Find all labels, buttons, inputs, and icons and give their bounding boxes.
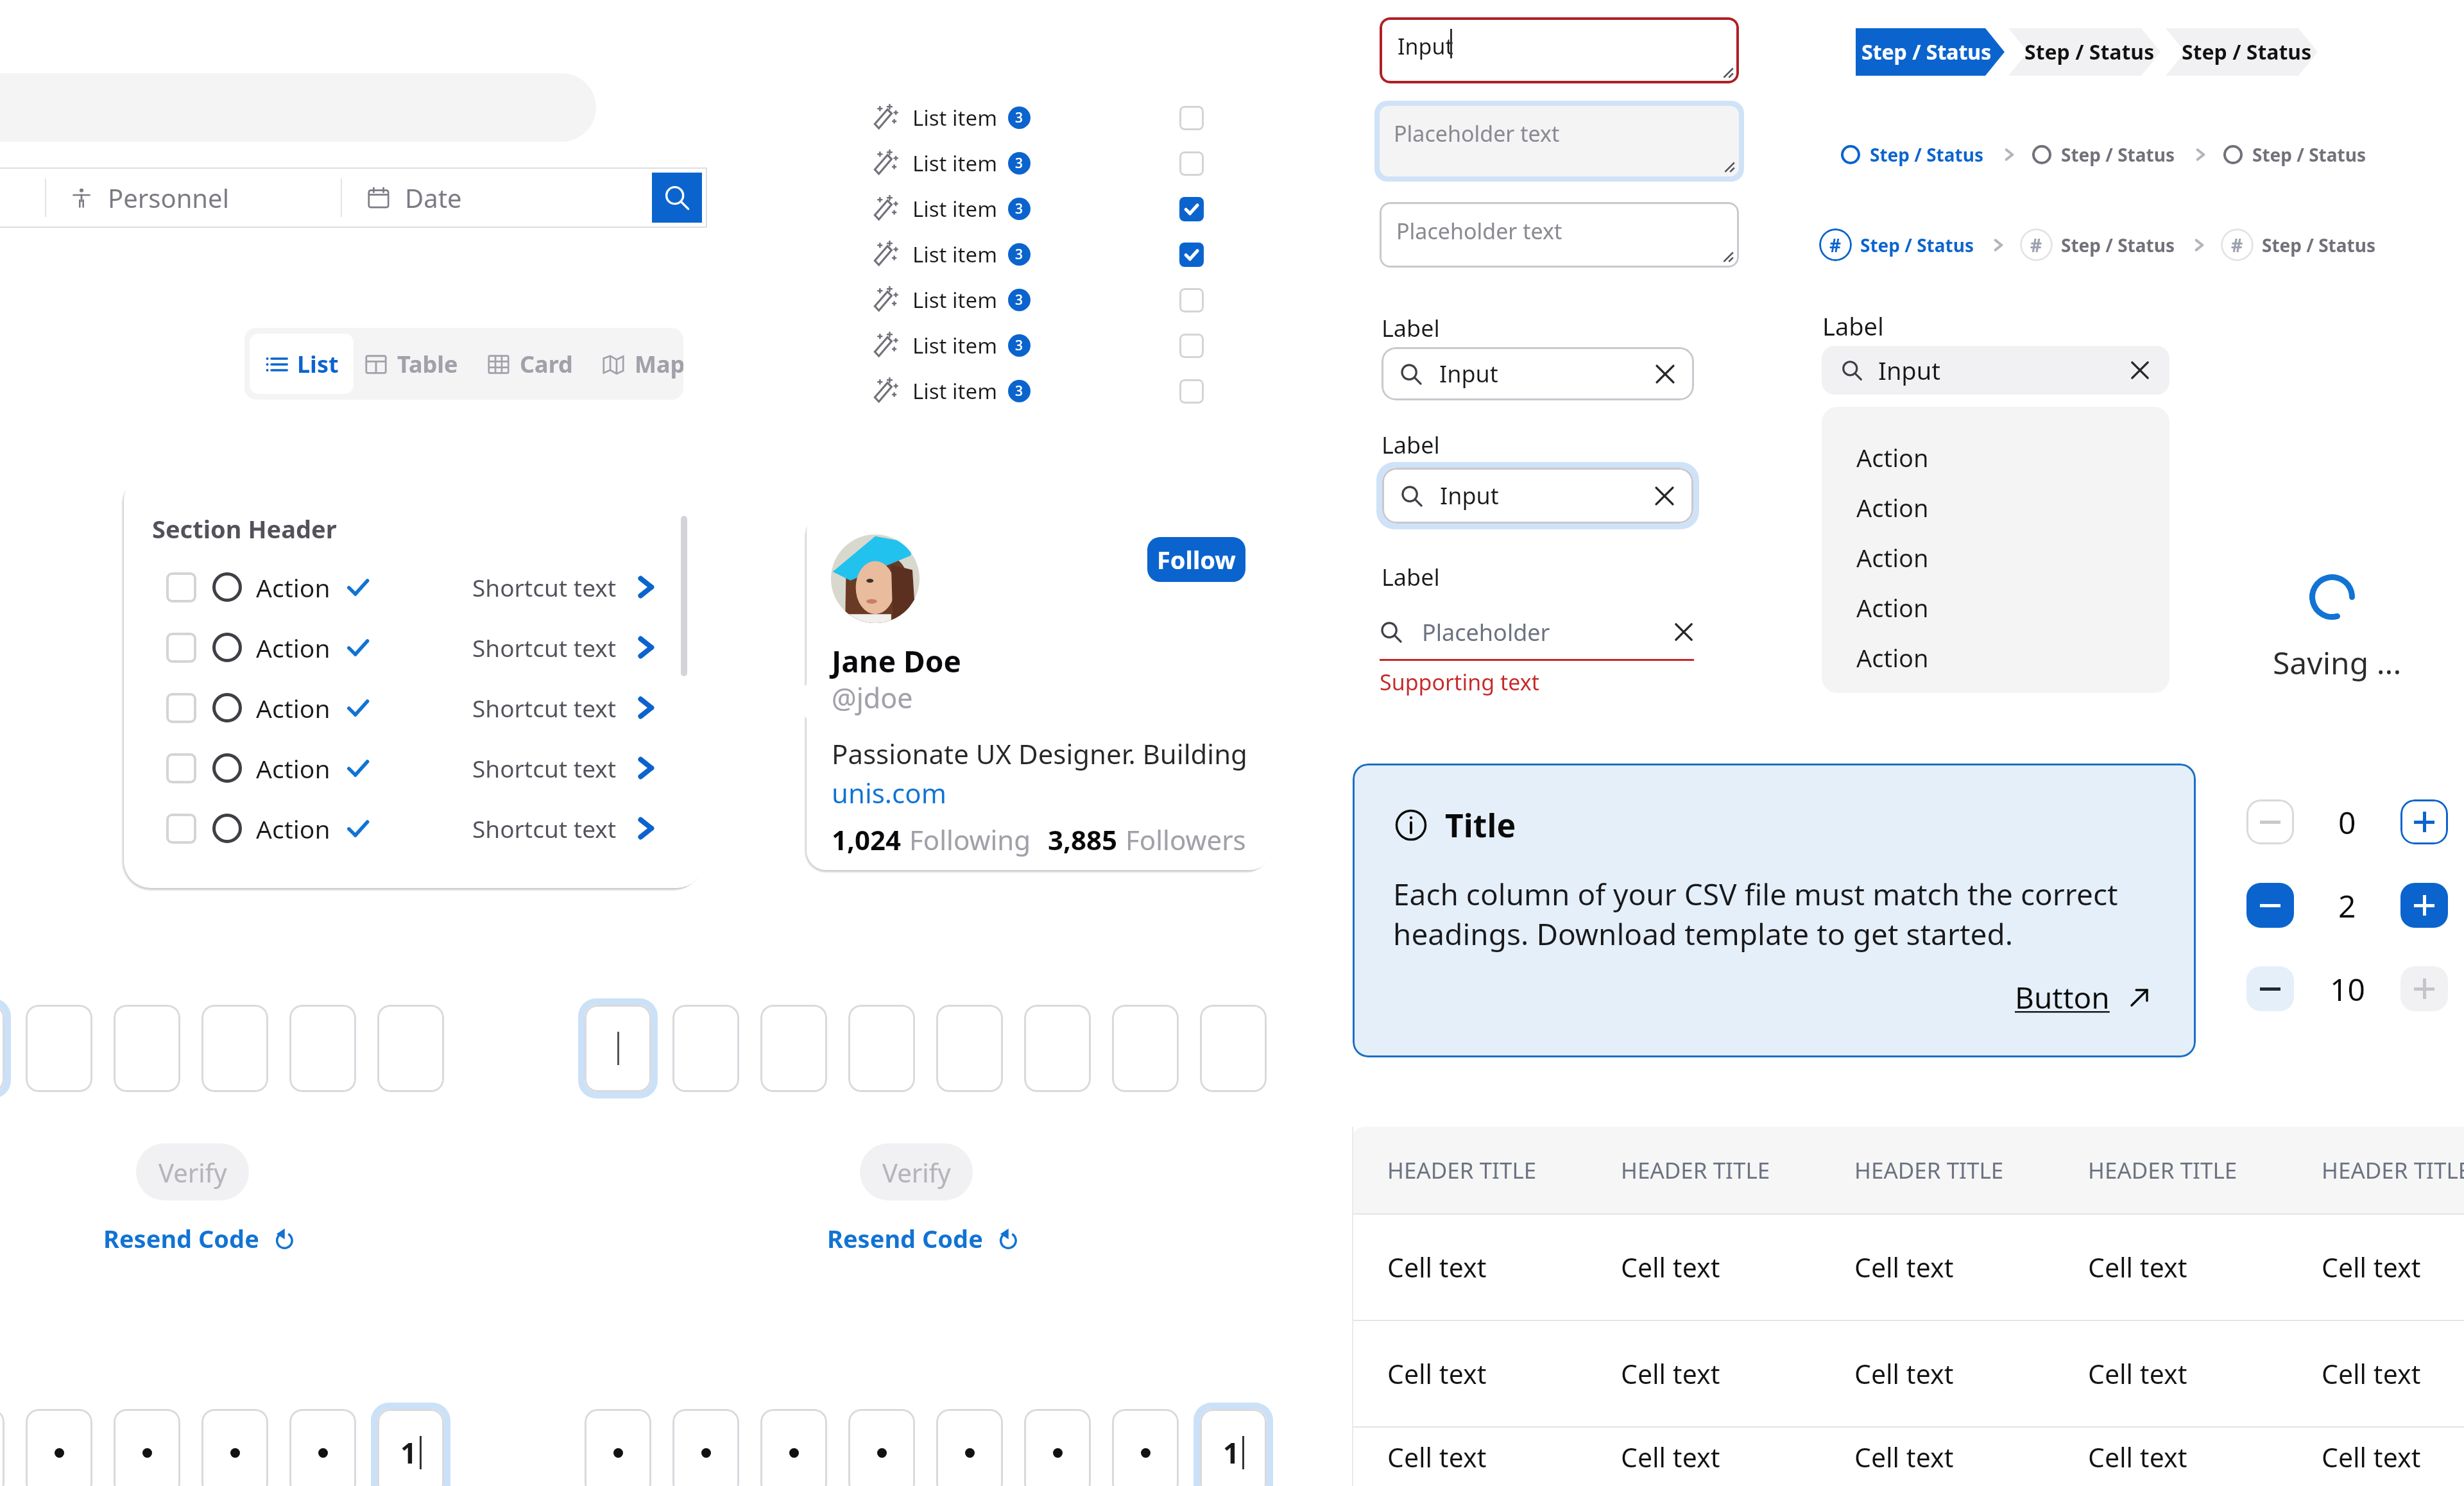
- button[interactable]: Increase: [2400, 799, 2448, 844]
- button[interactable]: Step / Status: [2008, 28, 2160, 76]
- button[interactable]: [1112, 1409, 1179, 1486]
- button[interactable]: Search: [652, 173, 702, 223]
- staticText: Step / Status: [2262, 233, 2375, 257]
- button[interactable]: [585, 1005, 651, 1092]
- staticText: Step / Status: [2182, 38, 2312, 66]
- staticText: 3: [1015, 336, 1023, 355]
- button[interactable]: [848, 1409, 915, 1486]
- button[interactable]: [26, 1409, 92, 1486]
- button[interactable]: [0, 1409, 4, 1486]
- button[interactable]: List item: [873, 232, 1204, 277]
- staticText: List item: [912, 240, 997, 269]
- staticText: Cell text: [2322, 1439, 2421, 1475]
- button[interactable]: List: [250, 334, 354, 394]
- button[interactable]: 1: [377, 1409, 444, 1486]
- button[interactable]: Step / Status: [1841, 142, 1983, 167]
- staticText: Shortcut text: [472, 571, 617, 603]
- button[interactable]: Button: [2015, 977, 2152, 1018]
- button[interactable]: List item: [873, 95, 1204, 141]
- button[interactable]: Step / Status: [2223, 142, 2366, 167]
- button[interactable]: Card: [486, 342, 573, 386]
- staticText: Step / Status: [2061, 142, 2175, 167]
- button[interactable]: [114, 1409, 180, 1486]
- button[interactable]: Toggle item: [1179, 151, 1204, 176]
- button[interactable]: [848, 1005, 915, 1092]
- button[interactable]: [201, 1409, 268, 1486]
- button[interactable]: Map: [601, 342, 683, 386]
- button[interactable]: Increase: [2400, 966, 2448, 1011]
- button[interactable]: Decrease: [2246, 966, 2294, 1011]
- button[interactable]: Verify: [136, 1143, 249, 1200]
- staticText: 2: [2338, 885, 2356, 927]
- staticText: Label: [1382, 429, 1440, 461]
- button[interactable]: Placeholder text: [1380, 106, 1739, 176]
- button[interactable]: [1200, 1005, 1267, 1092]
- button[interactable]: [585, 1409, 651, 1486]
- button[interactable]: Follow: [1147, 537, 1245, 582]
- button[interactable]: List item: [873, 368, 1204, 414]
- button[interactable]: [1024, 1409, 1091, 1486]
- button[interactable]: Input: [1822, 346, 2169, 395]
- button[interactable]: Action: [1822, 483, 2169, 533]
- button[interactable]: Action: [1822, 533, 2169, 583]
- button[interactable]: [760, 1005, 827, 1092]
- staticText: HEADER TITLE: [1621, 1155, 1770, 1186]
- button[interactable]: [1024, 1005, 1091, 1092]
- button[interactable]: Personnel: [0, 167, 707, 228]
- button[interactable]: 1: [1200, 1409, 1267, 1486]
- button[interactable]: [26, 1005, 92, 1092]
- button[interactable]: Action: [124, 557, 704, 617]
- button[interactable]: Action: [124, 617, 704, 678]
- staticText: Map: [635, 348, 683, 380]
- button[interactable]: Verify: [860, 1143, 973, 1200]
- button[interactable]: [289, 1005, 356, 1092]
- button[interactable]: [201, 1005, 268, 1092]
- button[interactable]: #: [2221, 228, 2375, 261]
- button[interactable]: List item: [873, 323, 1204, 368]
- button[interactable]: Table: [364, 342, 458, 386]
- button[interactable]: Action: [124, 678, 704, 738]
- button[interactable]: Step / Status: [2166, 28, 2318, 76]
- button[interactable]: Step / Status: [1856, 28, 2005, 76]
- button[interactable]: Placeholder: [1380, 603, 1694, 661]
- button[interactable]: Resend Code: [827, 1222, 1020, 1255]
- button[interactable]: Placeholder text: [1380, 202, 1739, 268]
- button[interactable]: Input: [1382, 347, 1694, 400]
- button[interactable]: [672, 1409, 739, 1486]
- button[interactable]: [936, 1005, 1003, 1092]
- button[interactable]: Toggle item: [1179, 334, 1204, 358]
- button[interactable]: Action: [1822, 432, 2169, 483]
- button[interactable]: [1112, 1005, 1179, 1092]
- button[interactable]: List item: [873, 186, 1204, 232]
- button[interactable]: #: [1819, 228, 1974, 261]
- button[interactable]: Input: [1380, 17, 1739, 83]
- button[interactable]: #: [2020, 228, 2175, 261]
- button[interactable]: List item: [873, 277, 1204, 323]
- staticText: Action: [1856, 441, 1929, 474]
- button[interactable]: Action: [124, 738, 704, 798]
- button[interactable]: [672, 1005, 739, 1092]
- button[interactable]: Toggle item: [1179, 288, 1204, 312]
- staticText: Cell text: [1387, 1249, 1487, 1285]
- button[interactable]: [377, 1005, 444, 1092]
- button[interactable]: [114, 1005, 180, 1092]
- button[interactable]: Toggle item: [1179, 243, 1204, 267]
- button[interactable]: Toggle item: [1179, 197, 1204, 221]
- button[interactable]: Resend Code: [103, 1222, 296, 1255]
- button[interactable]: Step / Status: [2032, 142, 2175, 167]
- button[interactable]: List item: [873, 141, 1204, 186]
- button[interactable]: Action: [1822, 583, 2169, 633]
- button[interactable]: [760, 1409, 827, 1486]
- button[interactable]: Input: [1382, 468, 1693, 524]
- staticText: HEADER TITLE: [2322, 1155, 2464, 1186]
- button[interactable]: Increase: [2400, 883, 2448, 928]
- button[interactable]: Toggle item: [1179, 379, 1204, 404]
- button[interactable]: Decrease: [2246, 799, 2294, 844]
- button[interactable]: Decrease: [2246, 883, 2294, 928]
- button[interactable]: Toggle item: [1179, 106, 1204, 130]
- button[interactable]: Action: [1822, 633, 2169, 683]
- button[interactable]: [289, 1409, 356, 1486]
- button[interactable]: [0, 1005, 4, 1092]
- button[interactable]: [936, 1409, 1003, 1486]
- button[interactable]: Action: [124, 798, 704, 858]
